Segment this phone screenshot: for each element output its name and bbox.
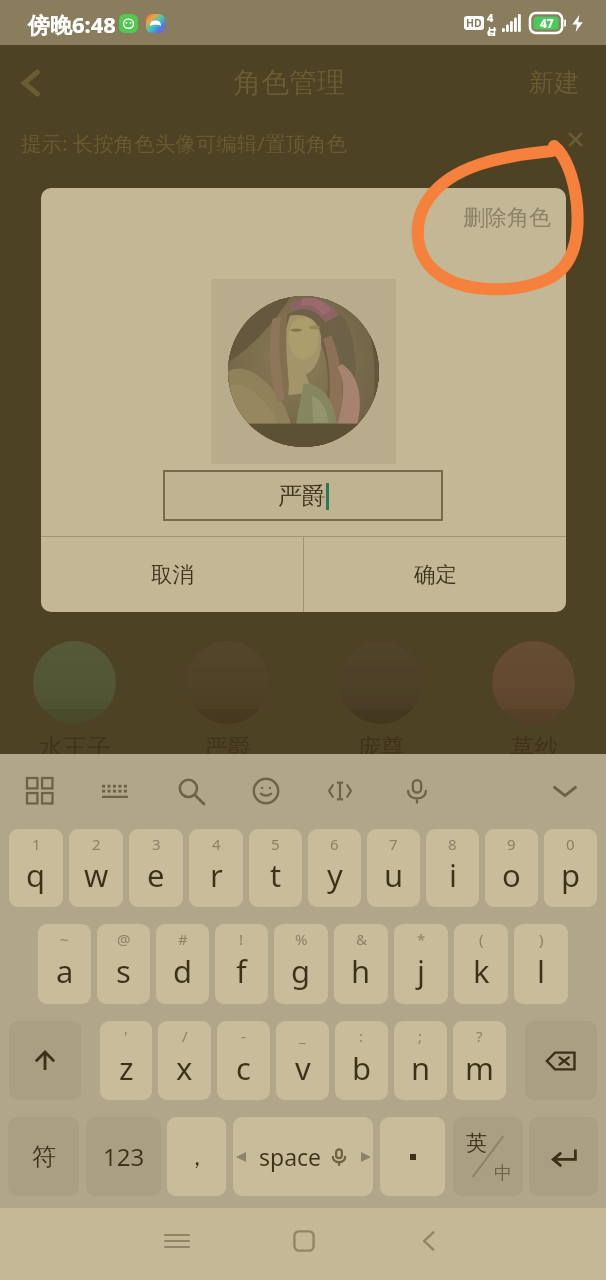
button[interactable]: Shift bbox=[9, 1021, 81, 1100]
staticText: y bbox=[327, 854, 343, 896]
button[interactable]: 9 bbox=[485, 829, 538, 907]
button[interactable]: Back bbox=[8, 59, 56, 107]
staticText: 8 bbox=[448, 834, 457, 854]
button[interactable]: ; bbox=[394, 1021, 447, 1100]
staticText: c bbox=[236, 1047, 251, 1089]
staticText: # bbox=[178, 929, 188, 949]
staticText: ' bbox=[124, 1026, 128, 1046]
button[interactable]: 8 bbox=[426, 829, 479, 907]
staticText: 4 bbox=[212, 834, 221, 854]
button[interactable]: 6 bbox=[308, 829, 361, 907]
button[interactable]: 水王子 bbox=[14, 641, 135, 763]
staticText: ， bbox=[185, 1142, 209, 1172]
staticText: 英 bbox=[466, 1130, 487, 1156]
button[interactable]: Enter bbox=[529, 1117, 598, 1196]
staticText: q bbox=[26, 854, 46, 896]
staticText: ( bbox=[479, 929, 484, 949]
staticText: ) bbox=[539, 929, 544, 949]
button[interactable]: 5 bbox=[249, 829, 302, 907]
button[interactable]: Close hint bbox=[562, 126, 588, 152]
button[interactable]: Text editing bbox=[317, 768, 363, 814]
staticText: 3 bbox=[152, 834, 161, 854]
staticText: 中 bbox=[494, 1162, 512, 1185]
button[interactable]: @ bbox=[97, 924, 150, 1004]
staticText: s bbox=[116, 950, 131, 992]
button[interactable]: 1 bbox=[9, 829, 63, 907]
staticText: 角色管理 bbox=[233, 65, 345, 100]
button[interactable]: _ bbox=[276, 1021, 329, 1100]
staticText: 7 bbox=[389, 834, 398, 854]
staticText: h bbox=[351, 950, 371, 992]
button[interactable]: ) bbox=[514, 924, 568, 1004]
button[interactable]: & bbox=[334, 924, 388, 1004]
button[interactable]: ( bbox=[454, 924, 508, 1004]
staticText: u bbox=[384, 854, 404, 896]
button[interactable]: Back bbox=[405, 1217, 453, 1265]
staticText: p bbox=[561, 854, 581, 896]
button[interactable]: 0 bbox=[544, 829, 597, 907]
button[interactable]: 删除角色 bbox=[454, 195, 560, 241]
button[interactable]: / bbox=[158, 1021, 211, 1100]
staticText: o bbox=[502, 854, 521, 896]
button[interactable]: 123 bbox=[86, 1117, 161, 1196]
button[interactable]: 庞尊 bbox=[320, 641, 441, 763]
staticText: x bbox=[176, 1047, 193, 1089]
staticText: 严爵 bbox=[204, 733, 252, 763]
staticText: a bbox=[56, 950, 74, 992]
button[interactable]: Voice input bbox=[394, 768, 440, 814]
staticText: k bbox=[473, 950, 490, 992]
staticText: 确定 bbox=[414, 561, 457, 588]
button[interactable]: Hide keyboard bbox=[542, 768, 588, 814]
button[interactable]: 严爵 bbox=[167, 641, 288, 763]
button[interactable]: 严爵 bbox=[164, 471, 442, 520]
button[interactable]: 3 bbox=[129, 829, 183, 907]
staticText: space bbox=[259, 1141, 322, 1172]
button[interactable]: Recents bbox=[153, 1217, 201, 1265]
staticText: 4G bbox=[487, 10, 500, 36]
button[interactable]: 确定 bbox=[304, 537, 566, 612]
button[interactable]: % bbox=[274, 924, 328, 1004]
button[interactable]: Emoji bbox=[243, 768, 289, 814]
staticText: g bbox=[291, 950, 311, 992]
button[interactable]: 草纱 bbox=[473, 641, 594, 763]
staticText: : bbox=[359, 1026, 364, 1046]
staticText: - bbox=[241, 1026, 246, 1046]
button[interactable]: 4 bbox=[189, 829, 243, 907]
staticText: / bbox=[182, 1026, 188, 1046]
button[interactable]: Keyboard bbox=[92, 768, 138, 814]
button[interactable]: 2 bbox=[69, 829, 123, 907]
button[interactable]: * bbox=[394, 924, 448, 1004]
button[interactable]: Search bbox=[168, 768, 214, 814]
staticText: t bbox=[270, 854, 282, 896]
staticText: b bbox=[352, 1047, 372, 1089]
staticText: n bbox=[411, 1047, 431, 1089]
staticText: ~ bbox=[60, 929, 69, 949]
button[interactable]: 符 bbox=[8, 1117, 79, 1196]
button[interactable]: Home bbox=[280, 1217, 328, 1265]
staticText: 6 bbox=[330, 834, 339, 854]
button[interactable]: - bbox=[217, 1021, 270, 1100]
button[interactable]: Layouts bbox=[17, 768, 63, 814]
button[interactable]: # bbox=[156, 924, 209, 1004]
button[interactable]: ? bbox=[453, 1021, 506, 1100]
button[interactable]: ~ bbox=[38, 924, 91, 1004]
button[interactable]: 7 bbox=[367, 829, 420, 907]
staticText: 符 bbox=[32, 1142, 56, 1172]
staticText: _ bbox=[299, 1026, 306, 1046]
staticText: j bbox=[417, 950, 425, 992]
button[interactable]: ' bbox=[100, 1021, 152, 1100]
button[interactable]: ! bbox=[215, 924, 268, 1004]
button[interactable]: Delete bbox=[525, 1021, 597, 1100]
button[interactable]: ， bbox=[167, 1117, 226, 1196]
staticText: 提示: 长按角色头像可编辑/置顶角色 bbox=[21, 129, 347, 157]
button[interactable]: : bbox=[335, 1021, 388, 1100]
button[interactable]: 取消 bbox=[41, 537, 303, 612]
staticText: ! bbox=[239, 929, 244, 949]
button[interactable]: Language switch bbox=[453, 1117, 523, 1196]
button[interactable]: 新建 bbox=[521, 59, 587, 106]
button[interactable]: space bbox=[233, 1117, 373, 1196]
staticText: 傍晚6:48 bbox=[28, 9, 116, 39]
button[interactable]: Period bbox=[380, 1117, 445, 1196]
button[interactable]: Character avatar bbox=[228, 296, 379, 447]
staticText: m bbox=[465, 1047, 494, 1089]
